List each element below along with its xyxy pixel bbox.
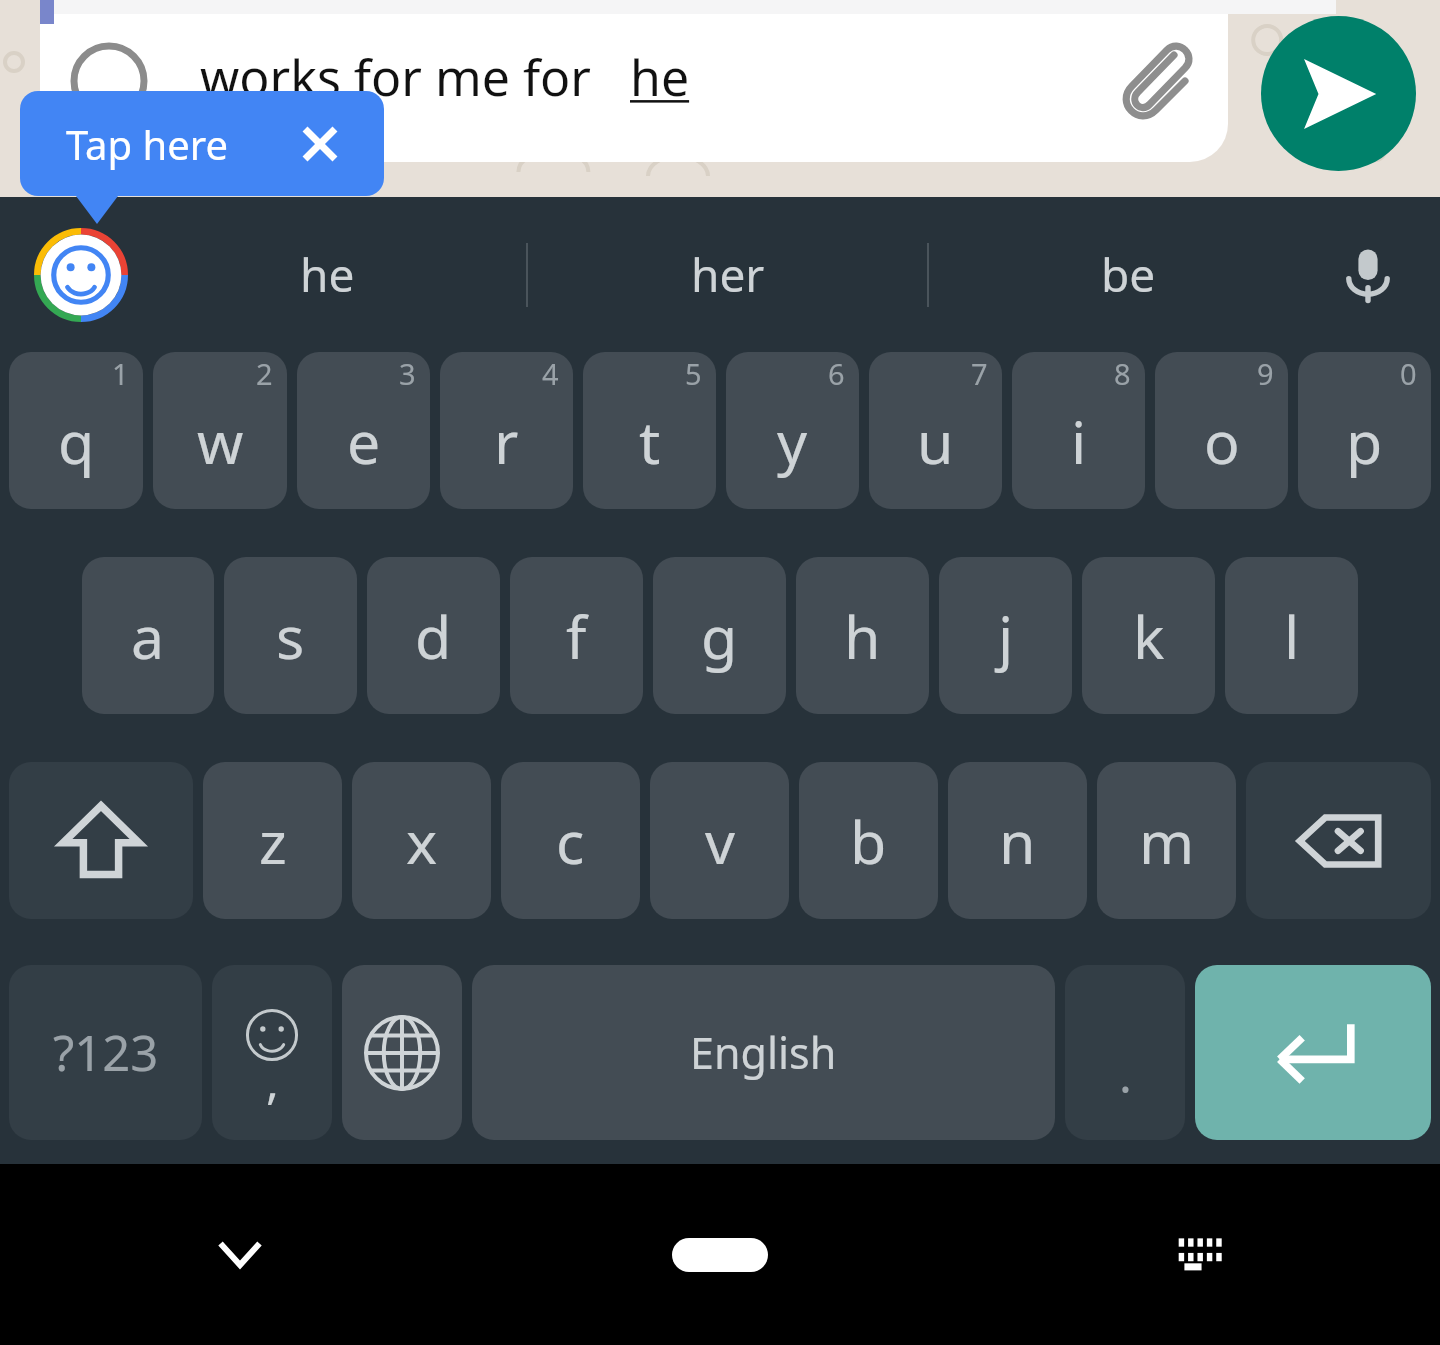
staticText: l [1284, 596, 1300, 676]
staticText: 7 [971, 354, 988, 393]
button[interactable]: he [128, 197, 526, 352]
button[interactable]: her [528, 197, 927, 352]
staticText: 5 [685, 354, 702, 393]
button[interactable]: c [501, 762, 640, 919]
button[interactable]: Emoji and Google [34, 228, 128, 322]
staticText: k [1133, 596, 1165, 676]
staticText: w [197, 401, 244, 481]
staticText: q [58, 401, 95, 481]
staticText: 8 [1114, 354, 1131, 393]
staticText: i [1071, 401, 1087, 481]
staticText: a [131, 596, 165, 676]
staticText: be [1101, 243, 1156, 306]
button[interactable]: h [796, 557, 929, 714]
staticText: 2 [256, 354, 273, 393]
staticText: . [1119, 1042, 1132, 1107]
button[interactable]: z [203, 762, 342, 919]
button[interactable]: l [1225, 557, 1358, 714]
staticText: s [276, 596, 305, 676]
button[interactable]: m [1097, 762, 1236, 919]
button[interactable]: Tap here [20, 91, 384, 196]
button[interactable]: d [367, 557, 500, 714]
staticText: 1 [112, 354, 129, 393]
button[interactable]: 7 [869, 352, 1002, 509]
button[interactable]: 4 [440, 352, 573, 509]
button[interactable]: Backspace [1246, 762, 1431, 919]
staticText: 3 [399, 354, 416, 393]
button[interactable]: 6 [726, 352, 859, 509]
button[interactable]: 1 [9, 352, 143, 509]
button[interactable]: Change language [342, 965, 462, 1140]
button[interactable]: Home [655, 1215, 785, 1295]
button[interactable]: 3 [297, 352, 430, 509]
button[interactable]: Close tip [298, 122, 342, 166]
button[interactable]: Send [1261, 16, 1416, 171]
staticText: d [415, 596, 452, 676]
button[interactable]: Hide keyboard [200, 1215, 280, 1295]
button[interactable]: Enter [1195, 965, 1431, 1140]
button[interactable]: be [929, 197, 1328, 352]
staticText: Tap here [66, 117, 229, 171]
button[interactable]: Switch keyboard [1160, 1215, 1240, 1295]
staticText: x [406, 801, 438, 881]
staticText: c [556, 801, 585, 881]
staticText: n [999, 801, 1036, 881]
staticText: 4 [542, 354, 559, 393]
button[interactable]: Emoji and comma [212, 965, 332, 1140]
button[interactable]: English [472, 965, 1055, 1140]
staticText: 9 [1257, 354, 1274, 393]
staticText: f [566, 596, 587, 676]
button[interactable]: 0 [1298, 352, 1431, 509]
staticText: works for me for [200, 43, 604, 111]
staticText: ?123 [53, 1019, 159, 1086]
staticText: h [844, 596, 881, 676]
staticText: m [1139, 801, 1195, 881]
staticText: j [998, 596, 1014, 676]
button[interactable]: k [1082, 557, 1215, 714]
staticText: g [701, 596, 738, 676]
button[interactable]: Shift [9, 762, 193, 919]
staticText: 0 [1400, 354, 1417, 393]
button[interactable]: n [948, 762, 1087, 919]
staticText: 6 [828, 354, 845, 393]
staticText: o [1204, 401, 1240, 481]
button[interactable]: v [650, 762, 789, 919]
button[interactable]: x [352, 762, 491, 919]
staticText: he [630, 43, 690, 111]
staticText: v [705, 801, 735, 881]
staticText: u [917, 401, 954, 481]
staticText: her [691, 243, 765, 306]
button[interactable]: a [82, 557, 214, 714]
button[interactable]: 9 [1155, 352, 1288, 509]
staticText: p [1346, 401, 1383, 481]
button[interactable]: s [224, 557, 357, 714]
button[interactable]: f [510, 557, 643, 714]
staticText: English [690, 1023, 837, 1082]
staticText: t [639, 401, 661, 481]
staticText: he [300, 243, 355, 306]
button[interactable]: 2 [153, 352, 287, 509]
staticText: e [347, 401, 381, 481]
staticText: y [777, 401, 808, 481]
button[interactable]: . [1065, 965, 1185, 1140]
button[interactable]: Attach [1104, 31, 1204, 131]
button[interactable]: Voice input [1328, 235, 1408, 315]
button[interactable]: 8 [1012, 352, 1145, 509]
staticText: b [850, 801, 887, 881]
button[interactable]: works for me for [40, 0, 1228, 162]
button[interactable]: 5 [583, 352, 716, 509]
button[interactable]: g [653, 557, 786, 714]
staticText: r [494, 401, 519, 481]
button[interactable]: ?123 [9, 965, 202, 1140]
button[interactable]: j [939, 557, 1072, 714]
button[interactable]: b [799, 762, 938, 919]
staticText: z [259, 801, 287, 881]
staticText: , [266, 1048, 279, 1113]
